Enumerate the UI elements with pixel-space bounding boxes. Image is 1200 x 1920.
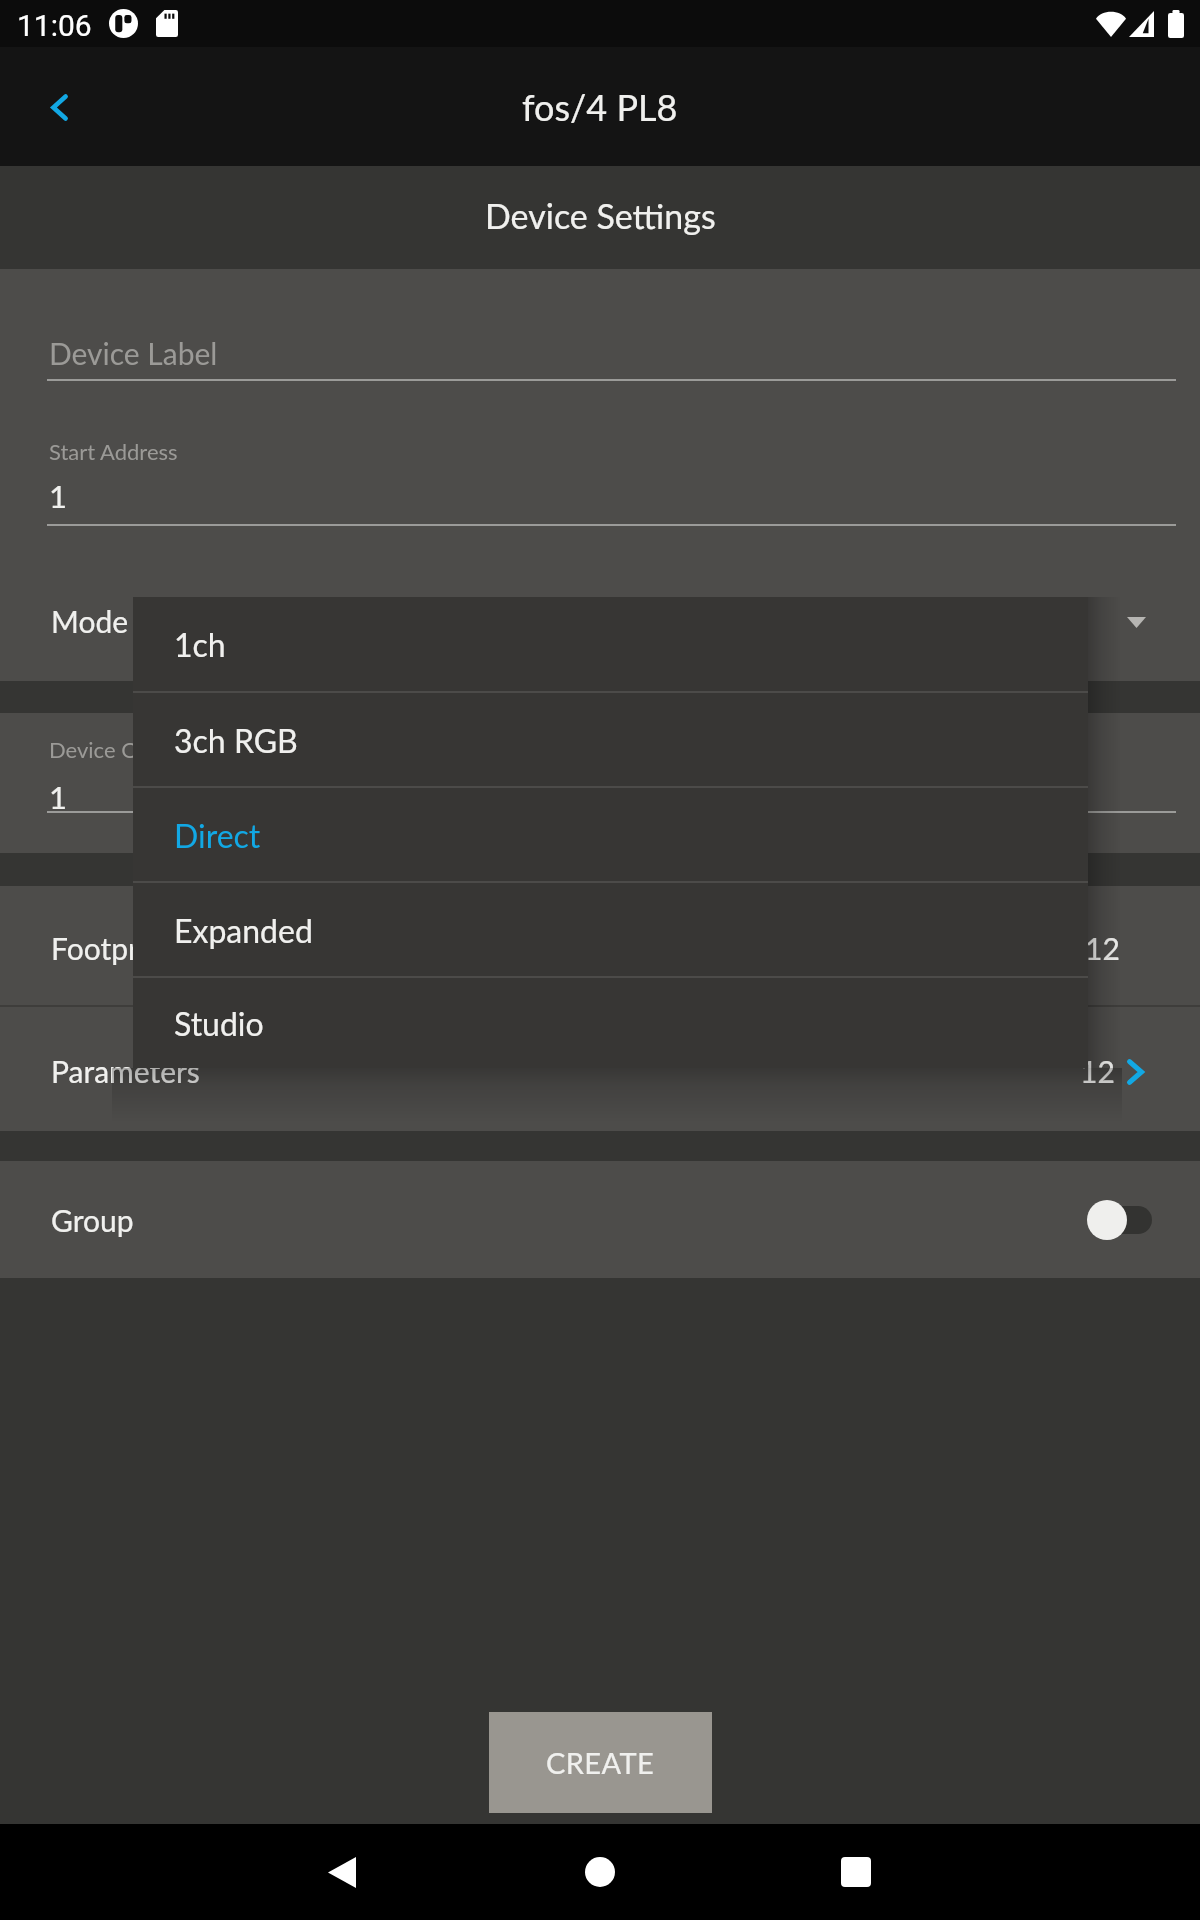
staticText: Direct <box>174 816 261 854</box>
staticText: 1 <box>49 477 67 514</box>
button[interactable]: Expanded <box>133 883 1088 976</box>
staticText: Device Label <box>49 335 218 371</box>
staticText: Group <box>51 1202 134 1238</box>
staticText: 12 <box>1085 930 1120 966</box>
button[interactable]: Back <box>294 1824 390 1920</box>
button[interactable]: Recent apps <box>808 1824 904 1920</box>
staticText: Footprint <box>51 930 174 966</box>
button[interactable]: Parameters <box>0 1007 1200 1131</box>
button[interactable]: 3ch RGB <box>133 693 1088 786</box>
staticText: Parameters <box>51 1053 200 1089</box>
staticText: Device Settings <box>485 195 716 236</box>
staticText: 12 <box>1080 1053 1115 1089</box>
button[interactable]: Back <box>17 65 101 149</box>
staticText: 1ch <box>174 625 226 663</box>
staticText: Start Address <box>49 438 178 464</box>
button[interactable]: CREATE <box>489 1712 712 1813</box>
button[interactable]: 1ch <box>133 597 1088 691</box>
staticText: 11:06 <box>17 8 92 43</box>
button[interactable]: Start Address <box>0 380 1200 525</box>
button[interactable]: Device Qty <box>0 713 1200 853</box>
staticText: Studio <box>174 1004 264 1042</box>
button[interactable]: Group <box>0 1161 1200 1278</box>
staticText: fos/4 PL8 <box>522 85 678 128</box>
button[interactable]: Device Label <box>0 269 1200 380</box>
staticText: CREATE <box>546 1745 655 1780</box>
staticText: 3ch RGB <box>174 721 298 759</box>
button[interactable]: Direct <box>133 788 1088 881</box>
button[interactable]: Home <box>552 1824 648 1920</box>
button[interactable]: Studio <box>133 978 1088 1068</box>
button[interactable]: Mode <box>0 525 1200 681</box>
staticText: 1 <box>49 778 67 815</box>
staticText: Mode <box>51 603 129 639</box>
staticText: Device Qty <box>49 736 158 762</box>
staticText: Expanded <box>174 911 313 949</box>
button[interactable]: Footprint <box>0 886 1200 1005</box>
